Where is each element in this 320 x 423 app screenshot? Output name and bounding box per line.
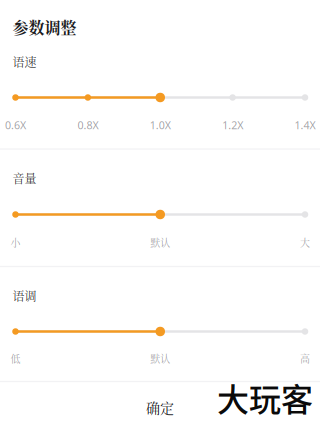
staticText: 参数调整 (12, 15, 76, 38)
staticText: 小 (10, 235, 20, 250)
button[interactable]: 确定 (0, 387, 320, 423)
staticText: 语调 (12, 287, 36, 304)
staticText: 语速 (12, 53, 36, 70)
staticText: 大玩客 (217, 374, 313, 421)
staticText: 大 (300, 235, 310, 250)
staticText: 0.8X (77, 118, 98, 132)
staticText: 音量 (12, 170, 36, 187)
staticText: 1.2X (222, 118, 243, 132)
staticText: 高 (300, 351, 310, 366)
staticText: 0.6X (5, 118, 26, 132)
staticText: 确定 (146, 397, 174, 417)
staticText: 低 (10, 351, 20, 366)
staticText: 默认 (150, 235, 170, 250)
staticText: 默认 (150, 351, 170, 366)
staticText: 1.0X (150, 118, 171, 132)
staticText: 1.4X (294, 118, 315, 132)
